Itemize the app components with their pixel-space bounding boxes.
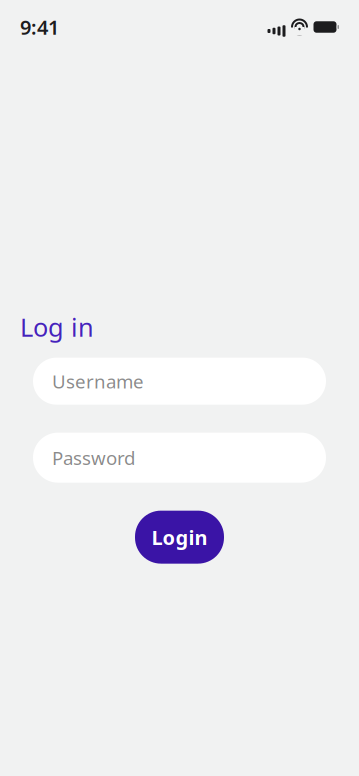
staticText: Username — [52, 369, 144, 393]
button[interactable]: Username — [33, 358, 326, 405]
button[interactable]: Login — [135, 511, 224, 564]
staticText: Login — [151, 524, 207, 550]
staticText: 9:41 — [20, 14, 59, 40]
staticText: Log in — [20, 310, 94, 344]
button[interactable]: Password — [33, 433, 326, 483]
staticText: Password — [52, 445, 135, 470]
